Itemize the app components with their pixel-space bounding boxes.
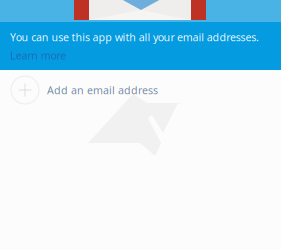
button[interactable]: Add an email address (0, 70, 281, 110)
staticText: Add an email address (47, 83, 158, 97)
staticText: Learn more (10, 48, 66, 62)
button[interactable]: You can use this app with all your email… (0, 22, 281, 70)
staticText: You can use this app with all your email… (10, 30, 259, 44)
